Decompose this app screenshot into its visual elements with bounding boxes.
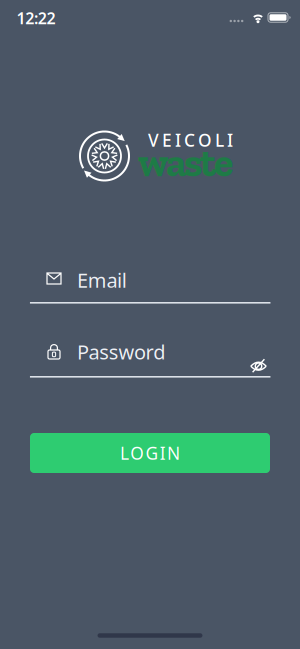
button[interactable]: Email [0, 258, 300, 310]
staticText: waste [138, 138, 233, 186]
button[interactable]: Show password [243, 352, 273, 378]
button[interactable]: LOGIN [30, 433, 270, 473]
button[interactable]: Password [0, 330, 300, 386]
staticText: VEICOLI [148, 128, 233, 151]
staticText: Email [77, 267, 127, 293]
staticText: Password [77, 338, 165, 365]
staticText: 12:22 [17, 7, 55, 29]
staticText: LOGIN [120, 441, 180, 464]
